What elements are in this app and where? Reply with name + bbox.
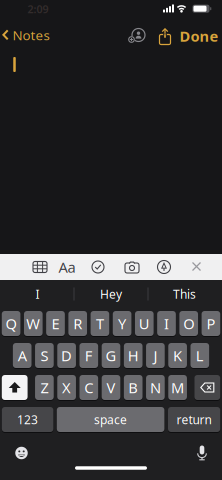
staticText: K (173, 346, 182, 365)
staticText: D (61, 346, 72, 365)
staticText: B (128, 378, 138, 397)
staticText: T (96, 314, 104, 333)
staticText: Q (6, 314, 17, 333)
button[interactable]: Done (177, 27, 221, 45)
staticText: W (26, 314, 40, 333)
button[interactable]: Back to Notes (0, 24, 51, 46)
button[interactable]: G (102, 342, 120, 369)
button[interactable]: V (102, 374, 120, 401)
button[interactable]: Dismiss Keyboard (192, 262, 202, 272)
button[interactable]: E (46, 310, 65, 337)
button[interactable]: Add People (127, 27, 147, 45)
staticText: Aa (58, 257, 75, 277)
staticText: return (177, 411, 212, 427)
button[interactable]: This (149, 283, 219, 305)
button[interactable]: Formatting (58, 259, 76, 275)
staticText: Hey (100, 286, 122, 302)
button[interactable]: M (168, 374, 187, 401)
staticText: N (150, 378, 161, 397)
button[interactable]: Shift (2, 374, 28, 401)
button[interactable]: Markup (157, 260, 171, 274)
staticText: U (139, 314, 150, 333)
button[interactable]: J (146, 342, 165, 369)
button[interactable]: S (35, 342, 54, 369)
button[interactable]: O (179, 310, 198, 337)
staticText: G (105, 346, 116, 365)
staticText: E (51, 314, 59, 333)
button[interactable]: N (146, 374, 165, 401)
button[interactable]: Dictation (196, 445, 207, 460)
button[interactable]: Insert Table (32, 260, 48, 274)
button[interactable]: space (57, 406, 164, 433)
staticText: O (183, 314, 194, 333)
button[interactable]: R (68, 310, 87, 337)
staticText: V (106, 378, 115, 397)
button[interactable]: Emoji (14, 446, 28, 460)
staticText: Done (179, 26, 218, 46)
button[interactable]: A (13, 342, 32, 369)
button[interactable]: U (135, 310, 154, 337)
button[interactable]: I (157, 310, 176, 337)
button[interactable]: return (168, 406, 220, 433)
button[interactable]: I (2, 283, 72, 305)
staticText: M (171, 378, 184, 397)
staticText: Notes (12, 26, 49, 44)
button[interactable]: K (168, 342, 187, 369)
button[interactable]: X (57, 374, 76, 401)
staticText: space (94, 411, 127, 427)
staticText: This (173, 286, 196, 302)
button[interactable]: B (124, 374, 142, 401)
button[interactable]: Share (157, 27, 173, 45)
staticText: F (85, 346, 93, 365)
staticText: Z (40, 378, 48, 397)
button[interactable]: Delete (194, 374, 220, 401)
staticText: 123 (17, 411, 38, 427)
button[interactable]: P (202, 310, 220, 337)
button[interactable]: Camera (124, 260, 140, 273)
staticText: S (40, 346, 48, 365)
staticText: H (128, 346, 139, 365)
staticText: X (62, 378, 71, 397)
staticText: P (206, 314, 215, 333)
staticText: Y (118, 314, 126, 333)
staticText: C (84, 378, 93, 397)
button[interactable]: Checklist (91, 260, 105, 274)
button[interactable]: Q (2, 310, 20, 337)
button[interactable]: D (57, 342, 76, 369)
button[interactable]: 123 (2, 406, 53, 433)
staticText: I (164, 314, 169, 333)
button[interactable]: L (190, 342, 209, 369)
button[interactable]: Y (113, 310, 131, 337)
button[interactable]: Hey (76, 283, 146, 305)
button[interactable]: F (79, 342, 98, 369)
button[interactable]: H (124, 342, 142, 369)
staticText: L (196, 346, 204, 365)
button[interactable]: Z (35, 374, 54, 401)
button[interactable]: W (24, 310, 43, 337)
staticText: A (18, 346, 27, 365)
button[interactable]: C (79, 374, 98, 401)
staticText: R (73, 314, 82, 333)
staticText: 2:09 (27, 2, 48, 16)
staticText: I (35, 286, 39, 302)
button[interactable]: T (90, 310, 109, 337)
staticText: J (153, 346, 157, 365)
